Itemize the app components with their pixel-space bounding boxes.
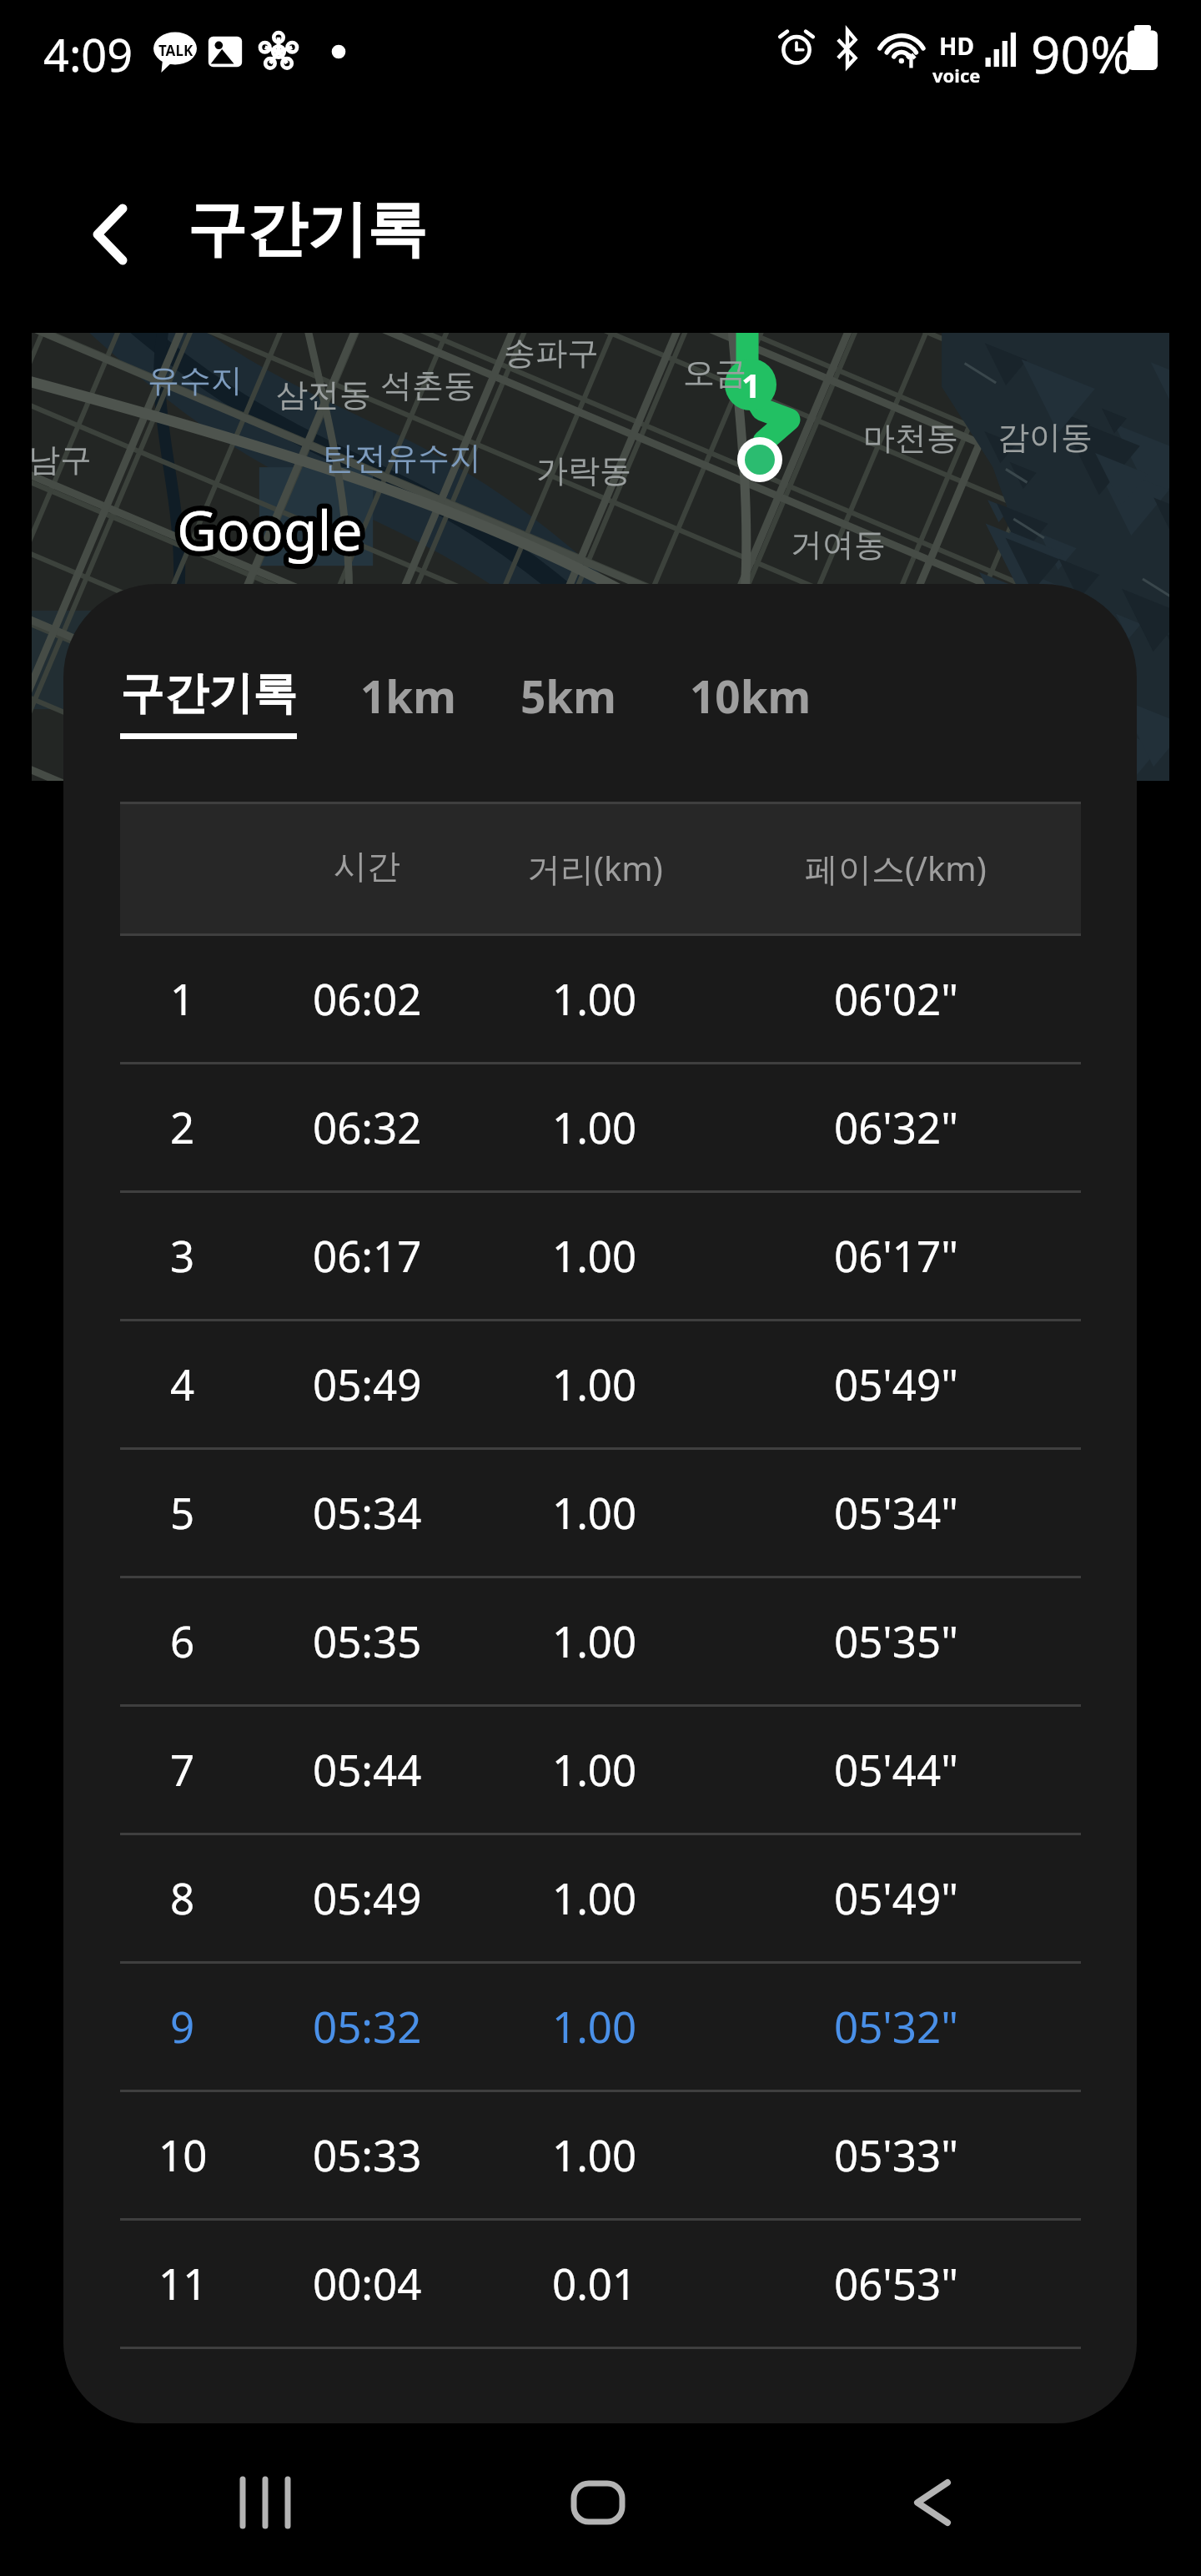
staticText: 1.00 bbox=[552, 969, 637, 1027]
button[interactable]: Recent apps bbox=[207, 2444, 324, 2561]
button[interactable]: 8 bbox=[120, 1835, 1081, 1964]
staticText: 1.00 bbox=[552, 1869, 637, 1926]
button[interactable]: 구간기록 bbox=[120, 666, 297, 739]
staticText: 가락동 bbox=[536, 450, 631, 491]
staticText: 석촌동 bbox=[380, 365, 475, 405]
staticText: 10 bbox=[158, 2126, 208, 2183]
staticText: 06'02" bbox=[834, 969, 958, 1027]
staticText: 05'44" bbox=[834, 1740, 958, 1798]
button[interactable]: 1km bbox=[360, 666, 456, 737]
button[interactable]: 2 bbox=[120, 1064, 1081, 1193]
staticText: 11 bbox=[158, 2254, 208, 2312]
staticText: TALK bbox=[158, 41, 193, 60]
button[interactable]: 6 bbox=[120, 1578, 1081, 1707]
staticText: 1.00 bbox=[552, 1997, 637, 2055]
staticText: 삼전동 bbox=[276, 375, 371, 415]
staticText: 5 bbox=[170, 1483, 195, 1541]
staticText: 3 bbox=[170, 1226, 195, 1284]
staticText: 90% bbox=[1031, 18, 1133, 88]
staticText: 감이동 bbox=[997, 417, 1093, 457]
staticText: 거여동 bbox=[791, 525, 886, 565]
button[interactable]: 7 bbox=[120, 1707, 1081, 1835]
staticText: 06'32" bbox=[834, 1098, 958, 1155]
staticText: 6 bbox=[170, 1612, 195, 1669]
button[interactable]: 10km bbox=[690, 666, 812, 737]
staticText: 06'53" bbox=[834, 2254, 958, 2312]
staticText: 페이스(/km) bbox=[805, 845, 987, 891]
staticText: 1.00 bbox=[552, 1740, 637, 1798]
staticText: 구간기록 bbox=[187, 192, 427, 268]
button[interactable]: 1 bbox=[120, 936, 1081, 1064]
staticText: HD bbox=[939, 30, 974, 62]
staticText: 1.00 bbox=[552, 1355, 637, 1412]
staticText: 05:49 bbox=[313, 1869, 422, 1926]
staticText: 거리(km) bbox=[527, 845, 663, 891]
staticText: 05:33 bbox=[313, 2126, 422, 2183]
staticText: 1 bbox=[741, 362, 761, 407]
staticText: 9 bbox=[170, 1997, 195, 2055]
staticText: 05:49 bbox=[313, 1355, 422, 1412]
staticText: 05'49" bbox=[834, 1869, 958, 1926]
staticText: 06:02 bbox=[313, 969, 422, 1027]
staticText: 0.01 bbox=[552, 2254, 637, 2312]
button[interactable]: 4 bbox=[120, 1321, 1081, 1450]
staticText: 탄전유수지 bbox=[323, 438, 481, 478]
staticText: 10km bbox=[690, 666, 812, 726]
staticText: 4:09 bbox=[43, 23, 133, 85]
staticText: 05'32" bbox=[834, 1997, 958, 2055]
staticText: 2 bbox=[170, 1098, 195, 1155]
staticText: 05'34" bbox=[834, 1483, 958, 1541]
staticText: 06'17" bbox=[834, 1226, 958, 1284]
staticText: 4 bbox=[170, 1355, 195, 1412]
staticText: 1.00 bbox=[552, 1098, 637, 1155]
staticText: 00:04 bbox=[313, 2254, 422, 2312]
staticText: 05:35 bbox=[313, 1612, 422, 1669]
staticText: 구간기록 bbox=[120, 666, 297, 722]
staticText: 유수지 bbox=[148, 360, 243, 400]
staticText: 06:17 bbox=[313, 1226, 422, 1284]
staticText: 7 bbox=[170, 1740, 195, 1798]
staticText: 마천동 bbox=[863, 418, 958, 458]
button[interactable]: Home bbox=[540, 2444, 656, 2561]
staticText: 05'49" bbox=[834, 1355, 958, 1412]
staticText: 05:32 bbox=[313, 1997, 422, 2055]
staticText: 05'33" bbox=[834, 2126, 958, 2183]
staticText: 06:32 bbox=[313, 1098, 422, 1155]
staticText: 1.00 bbox=[552, 1226, 637, 1284]
staticText: voice bbox=[932, 63, 981, 88]
staticText: 송파구 bbox=[504, 333, 599, 373]
staticText: 강남구 bbox=[32, 440, 92, 480]
button[interactable]: 5km bbox=[520, 666, 616, 737]
staticText: 1km bbox=[360, 666, 456, 726]
staticText: 시간 bbox=[334, 845, 400, 887]
staticText: 1.00 bbox=[552, 1483, 637, 1541]
staticText: 오금 bbox=[683, 353, 746, 393]
button[interactable]: Back bbox=[874, 2444, 991, 2561]
staticText: 1 bbox=[170, 969, 195, 1027]
staticText: 8 bbox=[170, 1869, 195, 1926]
staticText: 05:34 bbox=[313, 1483, 422, 1541]
staticText: 5km bbox=[520, 666, 616, 726]
staticText: 1.00 bbox=[552, 2126, 637, 2183]
staticText: 05:44 bbox=[313, 1740, 422, 1798]
staticText: Google bbox=[177, 491, 363, 566]
button[interactable]: 10 bbox=[120, 2092, 1081, 2221]
staticText: 05'35" bbox=[834, 1612, 958, 1669]
staticText: Google bbox=[177, 491, 363, 566]
button[interactable]: Back bbox=[68, 177, 152, 292]
button[interactable]: 9 bbox=[120, 1964, 1081, 2092]
staticText: 1.00 bbox=[552, 1612, 637, 1669]
button[interactable]: 5 bbox=[120, 1450, 1081, 1578]
button[interactable]: 11 bbox=[120, 2221, 1081, 2349]
button[interactable]: 3 bbox=[120, 1193, 1081, 1321]
